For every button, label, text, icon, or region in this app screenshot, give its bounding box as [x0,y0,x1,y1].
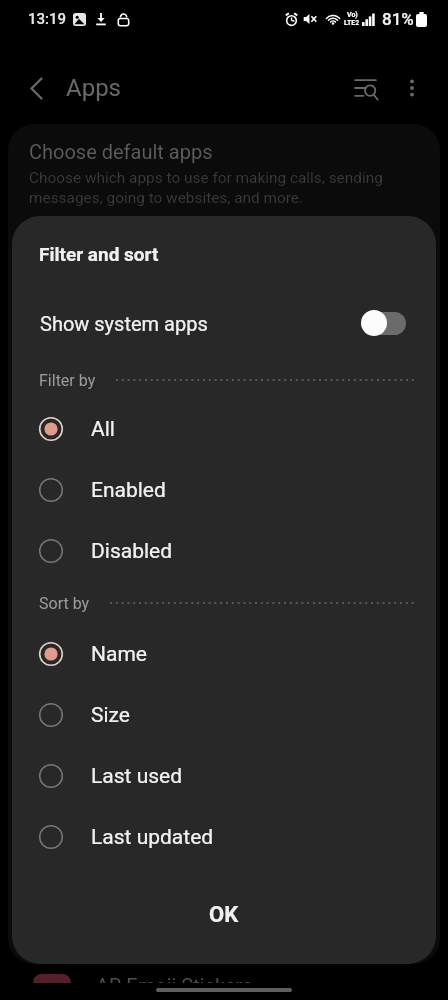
button[interactable]: Last updated [12,807,436,867]
staticText: Apps [66,74,121,102]
staticText: LTE2 [344,19,360,27]
staticText: Show system apps [40,312,208,335]
staticText: Filter and sort [39,243,159,265]
staticText: Sort by [39,594,90,613]
button[interactable]: Search [344,66,388,110]
button[interactable]: Show system apps [12,300,436,346]
button[interactable]: Size [12,685,436,745]
button[interactable]: OK [12,884,436,946]
button[interactable]: Last used [12,746,436,806]
button[interactable]: More options [390,66,434,110]
button[interactable]: Disabled [12,521,436,581]
button[interactable]: Enabled [12,460,436,520]
staticText: Last used [91,764,183,789]
staticText: Choose which apps to use for making call… [29,169,383,207]
button[interactable]: Name [12,624,436,684]
staticText: All [91,417,115,442]
button[interactable]: AR Emoji Stickers [0,966,448,983]
button[interactable]: Navigate up [18,70,54,106]
staticText: Filter by [39,371,96,390]
staticText: Disabled [91,539,173,564]
staticText: 13:19 [28,10,67,28]
button[interactable]: Show system apps toggle [361,309,419,337]
staticText: Last updated [91,825,214,850]
staticText: 81% [382,9,414,29]
staticText: Vo) [347,11,358,19]
staticText: Enabled [91,478,166,503]
staticText: OK [209,902,239,928]
button[interactable]: All [12,399,436,459]
staticText: Name [91,642,147,667]
staticText: Size [91,703,130,728]
staticText: AR Emoji Stickers [96,974,253,983]
staticText: Choose default apps [29,140,213,163]
